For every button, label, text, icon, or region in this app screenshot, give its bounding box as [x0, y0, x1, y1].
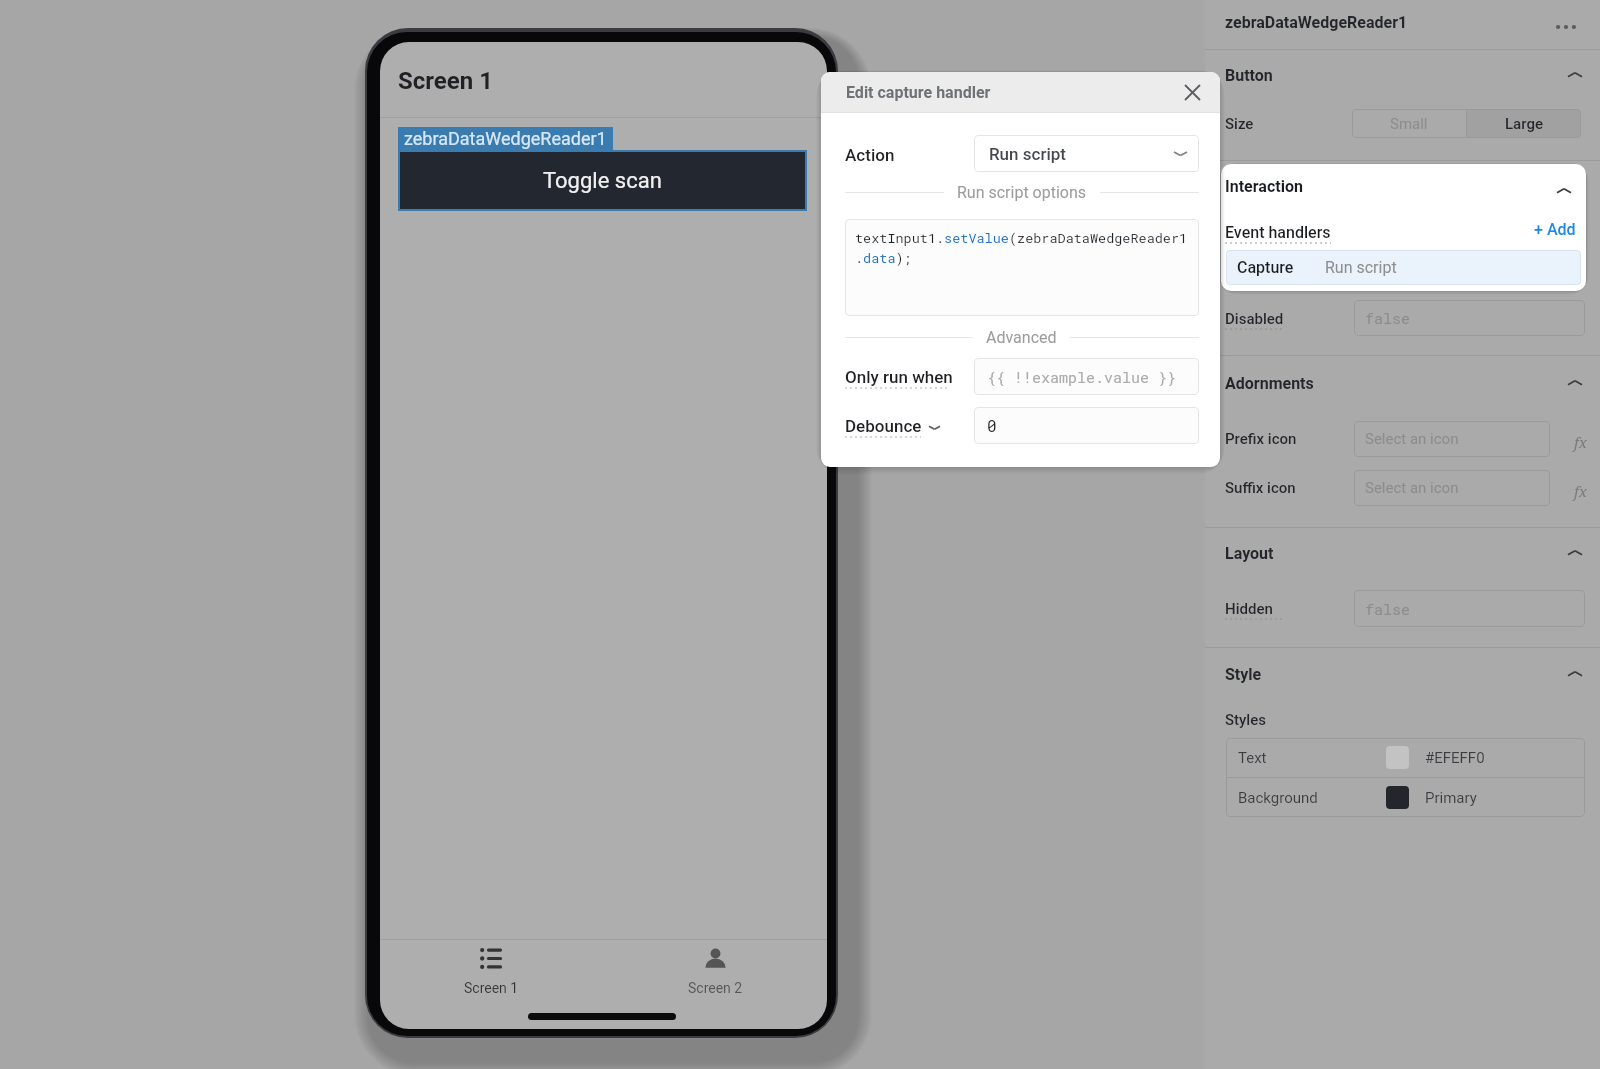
button[interactable]: 0 — [974, 407, 1199, 444]
staticText: Action — [845, 145, 895, 165]
staticText: Debounce — [845, 416, 922, 436]
button[interactable]: Select an icon — [1354, 421, 1550, 457]
button[interactable]: false — [1354, 300, 1585, 336]
button[interactable]: Button — [1225, 63, 1582, 87]
staticText: 0 — [987, 415, 997, 436]
staticText: #EFEFF0 — [1425, 749, 1485, 767]
staticText: Toggle scan — [543, 168, 662, 194]
staticText: Adornments — [1225, 374, 1314, 393]
button[interactable]: Screen 1 — [380, 940, 603, 1028]
staticText: false — [1365, 308, 1411, 328]
staticText: Style — [1225, 665, 1262, 684]
staticText: Only run when — [845, 367, 953, 387]
button[interactable]: Select an icon — [1354, 470, 1550, 506]
staticText: zebraDataWedgeReader1 — [1225, 13, 1408, 32]
staticText: Select an icon — [1365, 479, 1459, 497]
button[interactable]: Layout — [1225, 541, 1582, 565]
staticText: Screen 2 — [688, 980, 743, 996]
staticText: false — [1365, 599, 1411, 619]
staticText: Size — [1225, 115, 1254, 133]
staticText: Button — [1225, 66, 1273, 85]
staticText: Run script options — [957, 183, 1087, 202]
button[interactable]: Edit expression — [1568, 479, 1592, 503]
staticText: textInput1.setValue(zebraDataWedgeReader… — [855, 229, 1188, 267]
staticText: Edit capture handler — [846, 83, 991, 102]
staticText: Disabled — [1225, 310, 1284, 328]
staticText: Suffix icon — [1225, 479, 1296, 497]
staticText: Advanced — [986, 328, 1057, 347]
button[interactable]: Capture — [1226, 250, 1581, 285]
staticText: fx — [1574, 432, 1587, 452]
button[interactable]: More options — [1553, 14, 1579, 40]
staticText: Capture — [1237, 258, 1294, 277]
staticText: fx — [1574, 481, 1587, 501]
button[interactable]: Edit expression — [1568, 430, 1592, 454]
button[interactable]: Background — [1226, 778, 1585, 817]
staticText: Primary — [1425, 789, 1477, 807]
staticText: Layout — [1225, 544, 1274, 563]
staticText: + Add — [1534, 220, 1576, 239]
button[interactable]: Adornments — [1225, 371, 1582, 395]
staticText: Run script — [989, 144, 1066, 164]
staticText: Large — [1505, 115, 1543, 133]
staticText: Screen 1 — [398, 67, 493, 95]
staticText: Run script — [1325, 258, 1397, 277]
button[interactable]: Screen 2 — [603, 940, 827, 1028]
button[interactable]: Toggle scan — [398, 150, 807, 211]
staticText: zebraDataWedgeReader1 — [404, 128, 607, 149]
staticText: Screen 1 — [464, 980, 519, 996]
staticText: Select an icon — [1365, 430, 1459, 448]
staticText: Small — [1390, 115, 1428, 133]
button[interactable]: Text — [1226, 738, 1585, 777]
staticText: {{ !!example.value }} — [987, 367, 1177, 387]
staticText: Background — [1238, 789, 1386, 807]
button[interactable]: + Add — [1534, 220, 1576, 239]
staticText: Hidden — [1225, 600, 1273, 618]
button[interactable]: Close — [1178, 78, 1206, 106]
button[interactable]: Large — [1467, 109, 1581, 138]
staticText: Text — [1238, 749, 1386, 767]
staticText: Prefix icon — [1225, 430, 1297, 448]
button[interactable]: false — [1354, 590, 1585, 627]
staticText: Interaction — [1225, 177, 1303, 196]
staticText: Event handlers — [1225, 223, 1331, 242]
button[interactable]: {{ !!example.value }} — [974, 358, 1199, 395]
button[interactable]: Small — [1352, 109, 1466, 138]
button[interactable]: Run script — [974, 135, 1199, 172]
button[interactable]: Style — [1225, 662, 1582, 686]
staticText: Styles — [1225, 711, 1266, 729]
button[interactable]: textInput1.setValue(zebraDataWedgeReader… — [845, 219, 1199, 316]
